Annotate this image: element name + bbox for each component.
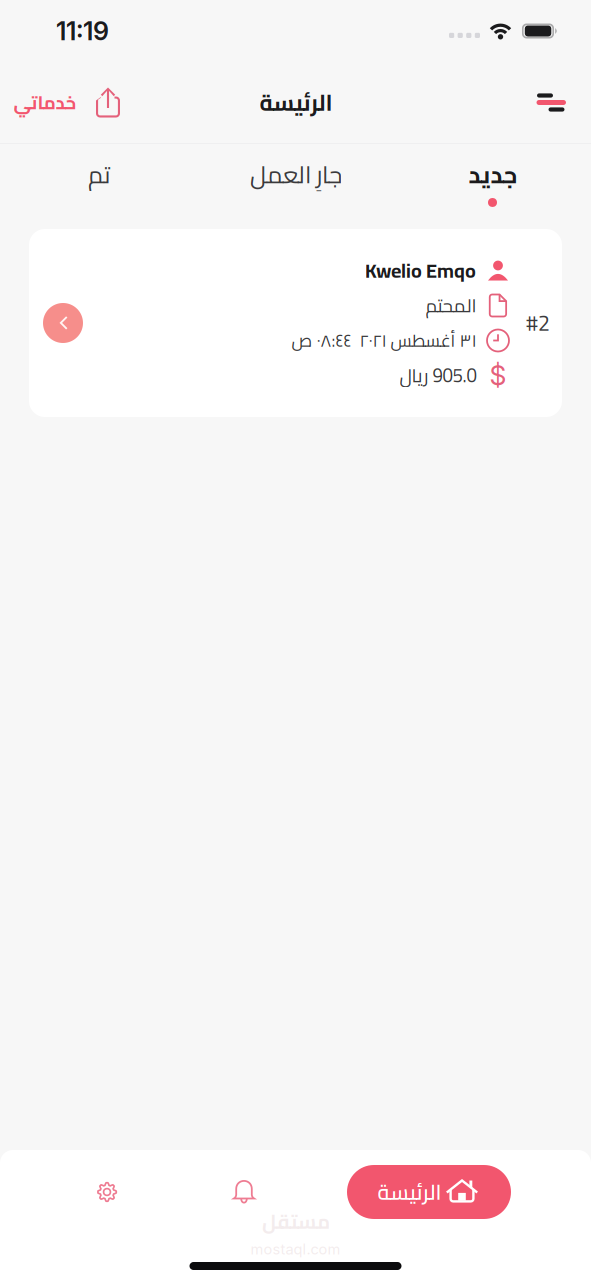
button[interactable]: جديد (394, 144, 591, 215)
staticText: #2 (526, 303, 550, 343)
button[interactable]: الرئيسة (347, 1165, 511, 1219)
button[interactable]: Settings (72, 1165, 142, 1219)
staticText: Kwelio Emqo (365, 252, 476, 289)
button[interactable]: Notifications (209, 1165, 279, 1219)
staticText: مستقل (261, 1203, 329, 1240)
button[interactable]: تم (0, 144, 197, 215)
staticText: mostaql.com (250, 1240, 340, 1258)
staticText: خدماتي (13, 85, 76, 120)
staticText: جارِ العمل (249, 152, 341, 197)
staticText: الرئيسة (259, 81, 332, 124)
staticText: 11:19 (56, 16, 109, 46)
staticText: 905.0 ريال (399, 358, 476, 393)
button[interactable]: Menu (524, 81, 578, 124)
staticText: ٣١ أغسطس ٢٠٢١ ٠٨:٤٤ ص (291, 324, 476, 357)
staticText: المحتم (425, 288, 476, 323)
staticText: تم (87, 152, 109, 197)
button[interactable]: جارِ العمل (197, 144, 394, 215)
button[interactable]: خدماتي (0, 79, 131, 126)
staticText: $ (489, 359, 506, 392)
staticText: جديد (468, 152, 517, 197)
button[interactable]: Kwelio Emqo (29, 229, 562, 417)
staticText: الرئيسة (377, 1172, 441, 1212)
